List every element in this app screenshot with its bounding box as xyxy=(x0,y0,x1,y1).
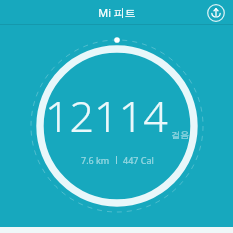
staticText: 447 Cal xyxy=(123,154,154,166)
staticText: 걸음 xyxy=(171,129,189,140)
staticText: 7.6 km xyxy=(81,154,110,166)
button[interactable]: Sync xyxy=(205,2,227,24)
button[interactable]: 12114 xyxy=(29,38,205,214)
staticText: Mi 피트 xyxy=(98,5,136,20)
staticText: 12114 xyxy=(45,86,168,145)
